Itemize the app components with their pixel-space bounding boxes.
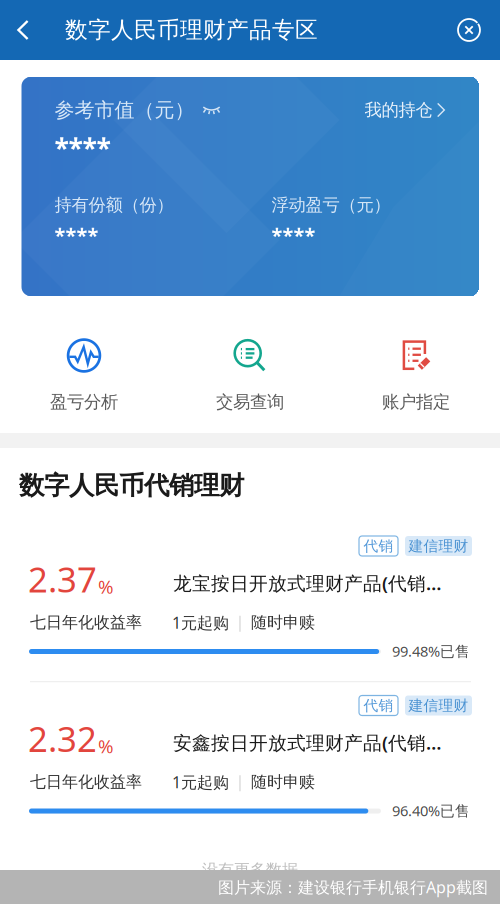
button[interactable]: 代销: [0, 682, 500, 840]
staticText: 图片来源：建设银行手机银行App截图: [218, 876, 488, 898]
staticText: ｜: [232, 772, 248, 792]
staticText: 参考市值（元）: [54, 98, 194, 122]
staticText: 持有份额（份）: [54, 194, 173, 216]
staticText: 七日年化收益率: [30, 772, 142, 792]
staticText: %: [98, 574, 114, 599]
button[interactable]: 返回: [0, 0, 46, 60]
staticText: 七日年化收益率: [30, 613, 142, 632]
staticText: 1元起购: [172, 771, 229, 793]
staticText: ****: [54, 130, 110, 166]
staticText: 账户指定: [382, 391, 450, 413]
staticText: 盈亏分析: [50, 391, 118, 413]
staticText: 代销: [363, 537, 393, 555]
staticText: 建信理财: [408, 537, 468, 555]
staticText: 安鑫按日开放式理财产品(代销…: [173, 730, 442, 755]
staticText: 龙宝按日开放式理财产品(代销…: [173, 571, 442, 595]
button[interactable]: 参考市值（元）: [21, 77, 478, 296]
staticText: ****: [54, 222, 98, 248]
staticText: 2.37: [28, 556, 97, 602]
staticText: 建信理财: [408, 696, 468, 714]
staticText: 代销: [363, 696, 393, 714]
staticText: 96.40%已售: [392, 801, 470, 820]
staticText: 我的持仓: [364, 99, 432, 121]
button[interactable]: 账户指定: [333, 296, 499, 433]
staticText: 2.32: [28, 715, 97, 761]
staticText: 交易查询: [216, 391, 284, 413]
staticText: 没有更多数据: [202, 860, 298, 880]
staticText: ｜: [232, 613, 248, 632]
staticText: %: [98, 734, 114, 758]
staticText: 99.48%已售: [392, 641, 470, 661]
staticText: 数字人民币代销理财: [19, 470, 244, 501]
staticText: 浮动盈亏（元）: [271, 194, 390, 216]
staticText: 数字人民币理财产品专区: [65, 16, 318, 44]
button[interactable]: 盈亏分析: [1, 296, 167, 433]
button[interactable]: 交易查询: [167, 296, 333, 433]
staticText: 随时申赎: [251, 772, 315, 792]
staticText: 随时申赎: [251, 613, 315, 632]
button[interactable]: 代销: [0, 523, 500, 681]
button[interactable]: 关闭: [438, 0, 500, 60]
staticText: 1元起购: [172, 612, 229, 633]
staticText: ****: [271, 222, 315, 248]
